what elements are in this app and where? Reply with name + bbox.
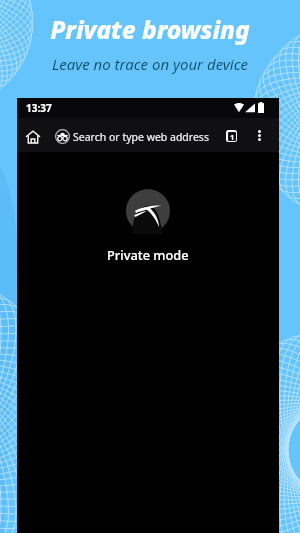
button[interactable]: Tabs xyxy=(220,125,242,147)
staticText: Private browsing xyxy=(0,13,300,46)
staticText: Private mode xyxy=(107,246,189,263)
staticText: 1 xyxy=(230,132,235,141)
button[interactable]: Search or type web address xyxy=(55,126,235,147)
staticText: Search or type web address xyxy=(73,130,209,144)
button[interactable]: More options xyxy=(250,126,268,144)
staticText: Leave no trace on your device xyxy=(0,54,300,74)
staticText: 13:37 xyxy=(26,101,52,115)
button[interactable]: Home xyxy=(22,126,44,148)
